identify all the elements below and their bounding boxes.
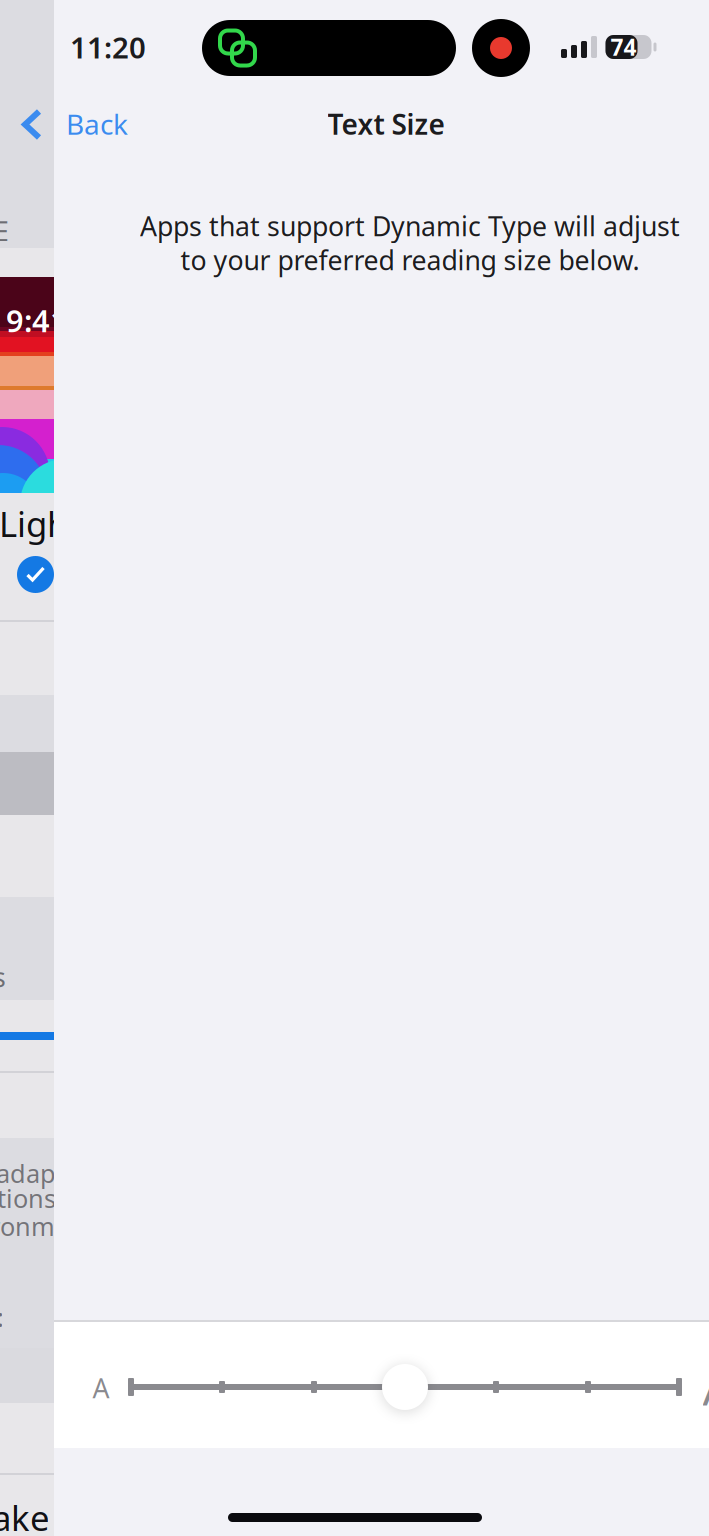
- staticText: itions: [0, 1181, 56, 1215]
- staticText: A: [92, 1370, 109, 1406]
- staticText: Vake: [0, 1494, 50, 1536]
- staticText: A: [702, 1355, 709, 1419]
- staticText: Text Size: [327, 105, 444, 143]
- staticText: Ligh: [0, 500, 68, 546]
- staticText: 9:41: [6, 300, 68, 341]
- staticText: ronm: [0, 1209, 55, 1243]
- staticText: :: [0, 1300, 4, 1334]
- staticText: 11:20: [70, 27, 146, 66]
- button[interactable]: Back: [54, 98, 184, 150]
- staticText: Back: [66, 105, 128, 143]
- staticText: Apps that support Dynamic Type will adju…: [140, 208, 680, 244]
- staticText: E: [0, 213, 9, 249]
- staticText: to your preferred reading size below.: [180, 242, 639, 278]
- staticText: 74: [610, 32, 636, 62]
- staticText: v adap: [0, 1156, 56, 1190]
- staticText: s: [0, 959, 6, 995]
